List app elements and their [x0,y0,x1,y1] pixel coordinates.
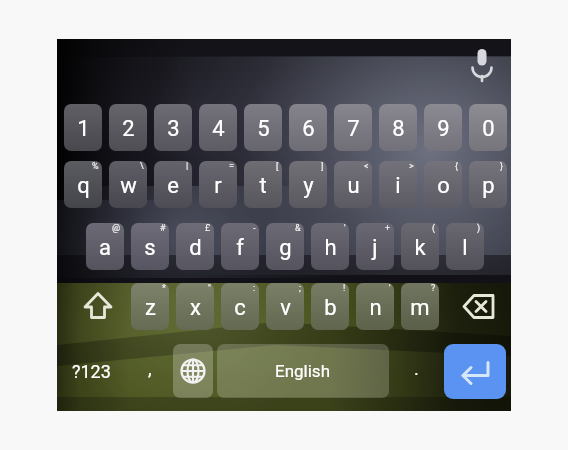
staticText: + [385,223,391,234]
button[interactable]: k [401,223,439,270]
staticText: 9 [437,116,450,142]
staticText: 3 [167,116,180,142]
staticText: h [324,235,337,261]
button[interactable]: m [401,283,439,330]
staticText: u [347,173,360,199]
staticText: k [414,235,426,261]
staticText: g [279,235,292,261]
button[interactable]: e [154,161,192,208]
staticText: 8 [392,116,405,142]
staticText: 7 [347,116,360,142]
button[interactable]: n [356,283,394,330]
staticText: n [369,295,382,321]
button[interactable]: p [469,161,507,208]
staticText: & [295,223,301,234]
button[interactable]: j [356,223,394,270]
button[interactable]: c [221,283,259,330]
staticText: 4 [212,116,225,142]
button[interactable]: d [176,223,214,270]
button[interactable]: 2 [109,104,147,151]
staticText: z [145,295,156,321]
button[interactable]: b [311,283,349,330]
button[interactable]: q [64,161,102,208]
staticText: f [236,235,244,261]
button[interactable]: Voice input [465,48,499,82]
button[interactable]: 1 [64,104,102,151]
button[interactable]: v [266,283,304,330]
button[interactable]: u [334,161,372,208]
staticText: @ [112,223,121,234]
button[interactable]: z [131,283,169,330]
button[interactable]: g [266,223,304,270]
button[interactable]: English [217,344,389,398]
staticText: m [410,295,430,321]
button[interactable]: 0 [469,104,507,151]
button[interactable]: r [199,161,237,208]
button[interactable]: x [176,283,214,330]
staticText: " [208,283,211,294]
button[interactable]: h [311,223,349,270]
staticText: a [99,235,111,261]
staticText: ( [432,223,436,234]
staticText: ? [431,283,436,294]
button[interactable]: 5 [244,104,282,151]
button[interactable]: 3 [154,104,192,151]
staticText: p [482,173,495,199]
button[interactable]: ?123 [57,344,126,398]
button[interactable]: 6 [289,104,327,151]
staticText: ?123 [72,361,111,382]
staticText: £ [205,223,211,234]
staticText: d [189,235,202,261]
staticText: ; [299,283,301,294]
button[interactable]: 4 [199,104,237,151]
button[interactable]: 9 [424,104,462,151]
staticText: [ [276,161,279,172]
staticText: { [455,161,459,172]
button[interactable]: l [446,223,484,270]
staticText: c [234,295,246,321]
staticText: q [77,173,90,199]
button[interactable]: , [126,344,173,398]
staticText: 5 [257,116,270,142]
staticText: # [160,223,166,234]
button[interactable]: a [86,223,124,270]
staticText: , [148,358,152,379]
staticText: s [144,235,156,261]
button[interactable]: Backspace [446,283,514,330]
button[interactable]: s [131,223,169,270]
staticText: y [303,173,314,199]
button[interactable]: y [289,161,327,208]
staticText: o [437,173,450,199]
staticText: : [253,283,256,294]
button[interactable]: i [379,161,417,208]
staticText: ) [477,223,481,234]
staticText: - [253,223,256,234]
staticText: 6 [302,116,315,142]
staticText: = [229,161,234,172]
staticText: v [280,295,291,321]
button[interactable]: 8 [379,104,417,151]
staticText: } [500,161,504,172]
staticText: ] [321,161,324,172]
staticText: e [167,173,179,199]
button[interactable]: t [244,161,282,208]
button[interactable]: Change language [173,344,213,398]
button[interactable]: . [392,344,440,398]
button[interactable]: Shift [64,283,132,330]
staticText: ' [389,283,391,294]
staticText: 1 [77,116,90,142]
button[interactable]: w [109,161,147,208]
staticText: 2 [122,116,135,142]
staticText: ! [343,283,346,294]
staticText: | [186,161,189,172]
button[interactable]: Enter [444,344,506,399]
staticText: . [414,358,419,379]
staticText: % [92,161,99,172]
staticText: l [462,235,468,261]
button[interactable]: 7 [334,104,372,151]
staticText: * [162,283,166,294]
button[interactable]: o [424,161,462,208]
button[interactable]: f [221,223,259,270]
staticText: i [395,173,401,199]
staticText: 0 [482,116,495,142]
